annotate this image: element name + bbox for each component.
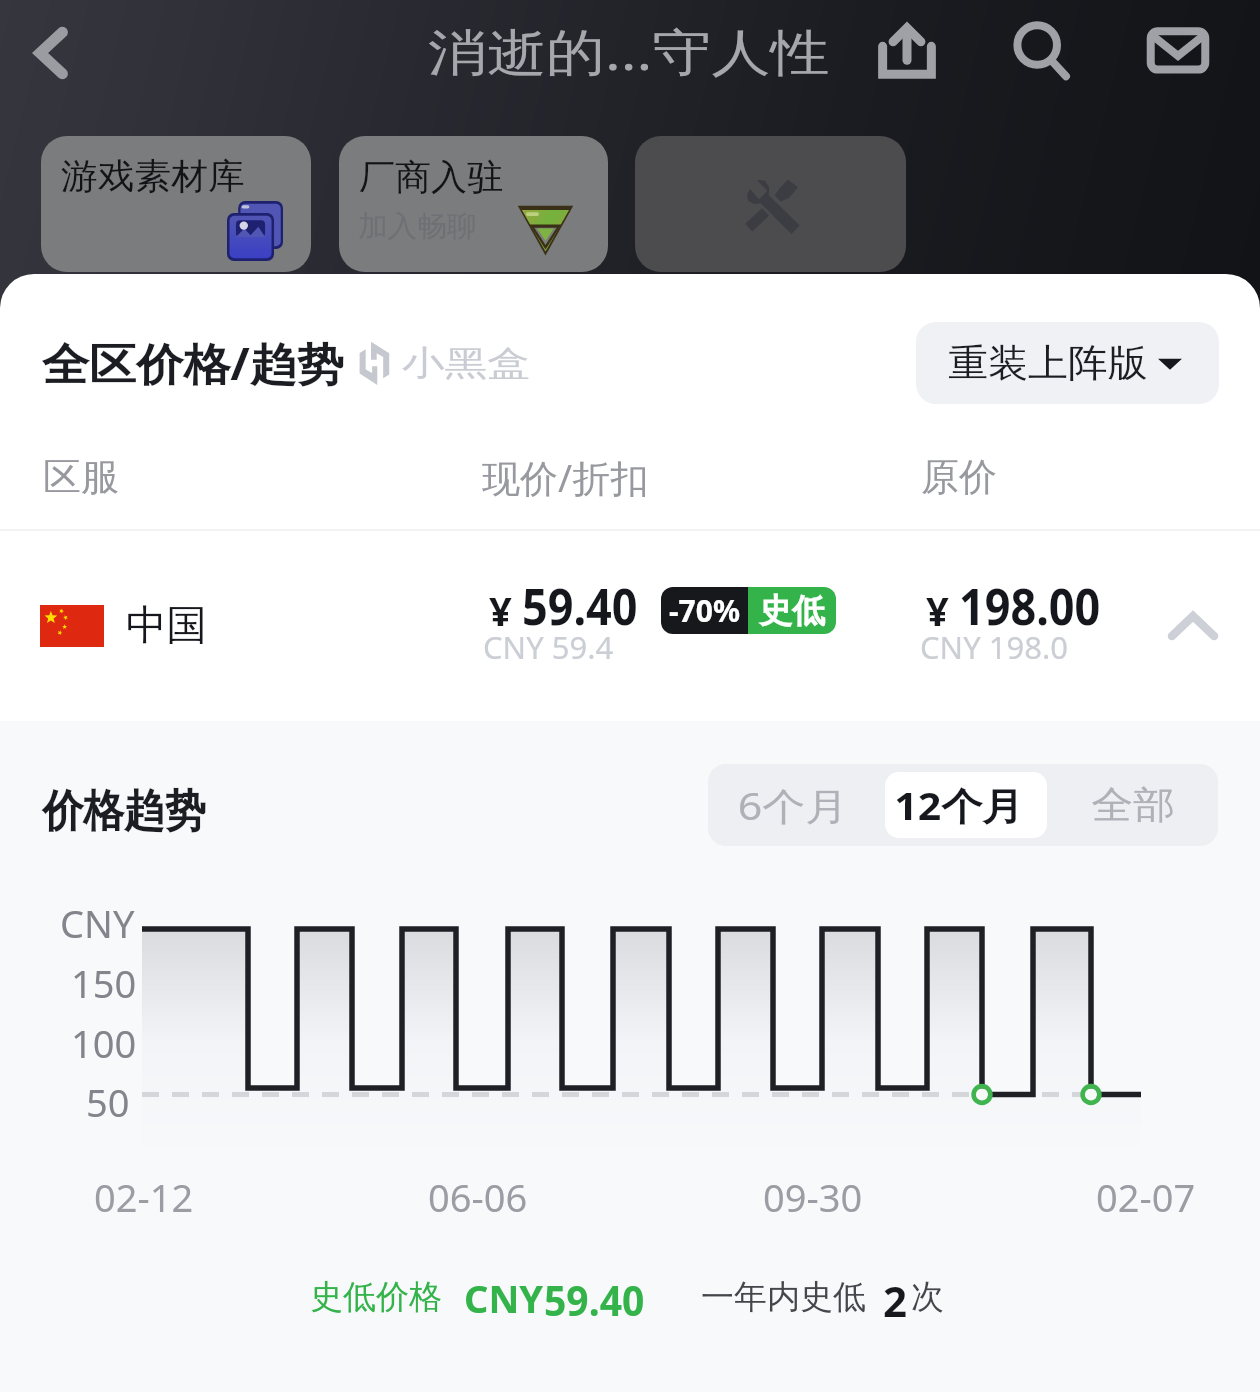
staticText: 50 bbox=[86, 1076, 130, 1128]
button[interactable]: Search bbox=[996, 5, 1088, 97]
staticText: ¥ bbox=[926, 583, 949, 637]
button[interactable]: 中国 bbox=[0, 531, 1260, 721]
staticText: 厂商入驻 bbox=[359, 155, 503, 199]
button[interactable]: 厂商入驻 bbox=[339, 136, 608, 272]
staticText: 6个月 bbox=[738, 779, 848, 831]
staticText: 02-12 bbox=[94, 1171, 194, 1223]
staticText: 史低价格 bbox=[310, 1276, 442, 1318]
staticText: 区服 bbox=[43, 453, 119, 501]
staticText: 02-07 bbox=[1096, 1171, 1196, 1223]
staticText: CNY 198.0 bbox=[920, 626, 1068, 668]
staticText: 12个月 bbox=[894, 779, 1024, 831]
staticText: 59.40 bbox=[522, 572, 638, 640]
button[interactable]: 12个月 bbox=[885, 772, 1047, 838]
staticText: 中国 bbox=[126, 600, 207, 652]
staticText: CNY bbox=[60, 897, 135, 949]
staticText: 游戏素材库 bbox=[61, 154, 245, 198]
staticText: 次 bbox=[911, 1276, 944, 1318]
staticText: 150 bbox=[71, 957, 137, 1009]
staticText: 06-06 bbox=[428, 1171, 528, 1223]
staticText: 价格趋势 bbox=[42, 784, 206, 839]
button[interactable]: Messages bbox=[1132, 5, 1224, 97]
staticText: 100 bbox=[71, 1017, 137, 1069]
staticText: CNY bbox=[464, 1272, 544, 1324]
staticText: 59.40 bbox=[544, 1271, 644, 1328]
staticText: 一年内史低 bbox=[701, 1276, 866, 1318]
staticText: 全区价格/趋势 bbox=[42, 333, 345, 393]
staticText: 加入畅聊 bbox=[358, 208, 476, 245]
button[interactable]: Collapse bbox=[1152, 585, 1234, 667]
button[interactable]: 全部 bbox=[1056, 772, 1210, 838]
staticText: 2 bbox=[883, 1272, 908, 1329]
button[interactable]: 游戏素材库 bbox=[41, 136, 311, 272]
button[interactable]: 6个月 bbox=[716, 772, 876, 838]
staticText: 小黑盒 bbox=[402, 342, 529, 385]
staticText: CNY 59.4 bbox=[483, 626, 614, 668]
button[interactable]: Back bbox=[2, 3, 102, 103]
staticText: 现价/折扣 bbox=[482, 451, 649, 503]
staticText: 原价 bbox=[921, 453, 997, 501]
button[interactable]: Tools bbox=[635, 136, 906, 272]
staticText: 史低 bbox=[759, 590, 825, 632]
staticText: 198.00 bbox=[959, 572, 1101, 640]
staticText: 09-30 bbox=[763, 1171, 863, 1223]
staticText: 重装上阵版 bbox=[948, 339, 1148, 387]
staticText: 消逝的...守人性 bbox=[428, 17, 830, 85]
button[interactable]: 重装上阵版 bbox=[916, 322, 1219, 404]
staticText: 全部 bbox=[1091, 781, 1175, 829]
staticText: ¥ bbox=[489, 583, 512, 637]
button[interactable]: Share bbox=[861, 5, 953, 97]
staticText: -70% bbox=[669, 590, 740, 631]
